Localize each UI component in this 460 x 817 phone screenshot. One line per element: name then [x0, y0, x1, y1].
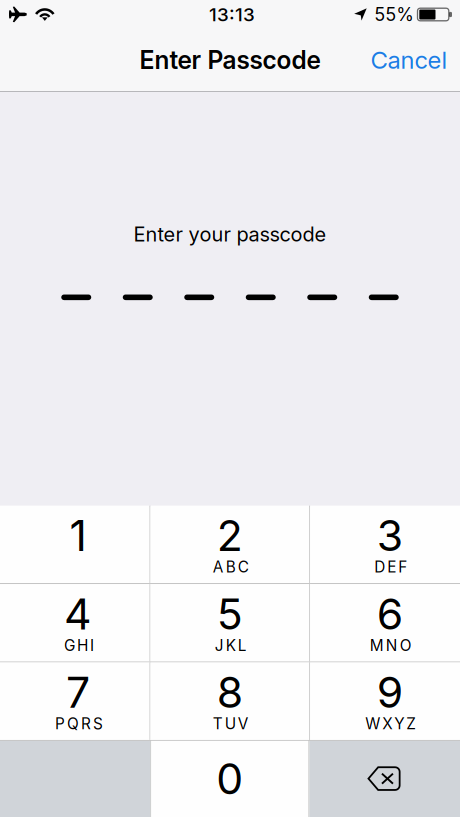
staticText: 8 — [217, 666, 243, 718]
staticText: 0 — [216, 753, 243, 804]
button[interactable]: Delete — [309, 741, 460, 817]
staticText: PQRS — [55, 714, 103, 733]
button[interactable]: 0 — [151, 741, 308, 817]
staticText: 6 — [377, 588, 403, 640]
staticText: ABC — [213, 558, 249, 576]
button[interactable]: 8 — [150, 662, 309, 740]
staticText: 9 — [377, 666, 403, 718]
staticText: GHI — [64, 636, 94, 655]
button[interactable]: 1 — [0, 506, 150, 583]
button[interactable]: 7 — [0, 662, 150, 740]
staticText: 13:13 — [209, 3, 255, 26]
staticText: DEF — [374, 558, 407, 576]
staticText: 4 — [64, 588, 92, 640]
button[interactable]: 3 — [310, 506, 460, 583]
staticText: MNO — [370, 636, 412, 655]
staticText: WXYZ — [365, 714, 416, 733]
staticText: 7 — [66, 666, 90, 718]
staticText: 55% — [374, 4, 414, 25]
button[interactable]: 4 — [0, 584, 150, 661]
staticText: 5 — [217, 588, 243, 640]
staticText: 2 — [217, 510, 243, 561]
staticText: Enter Passcode — [139, 45, 320, 75]
staticText: JKL — [215, 636, 247, 655]
staticText: Cancel — [370, 45, 447, 74]
button[interactable]: 9 — [310, 662, 460, 740]
staticText: Enter your passcode — [133, 222, 326, 246]
button[interactable]: Cancel — [366, 29, 452, 92]
staticText: 3 — [377, 510, 403, 561]
staticText: 1 — [69, 510, 86, 561]
staticText: TUV — [213, 714, 249, 733]
button[interactable]: 6 — [310, 584, 460, 661]
button[interactable]: 2 — [150, 506, 309, 583]
button[interactable]: 5 — [150, 584, 309, 661]
